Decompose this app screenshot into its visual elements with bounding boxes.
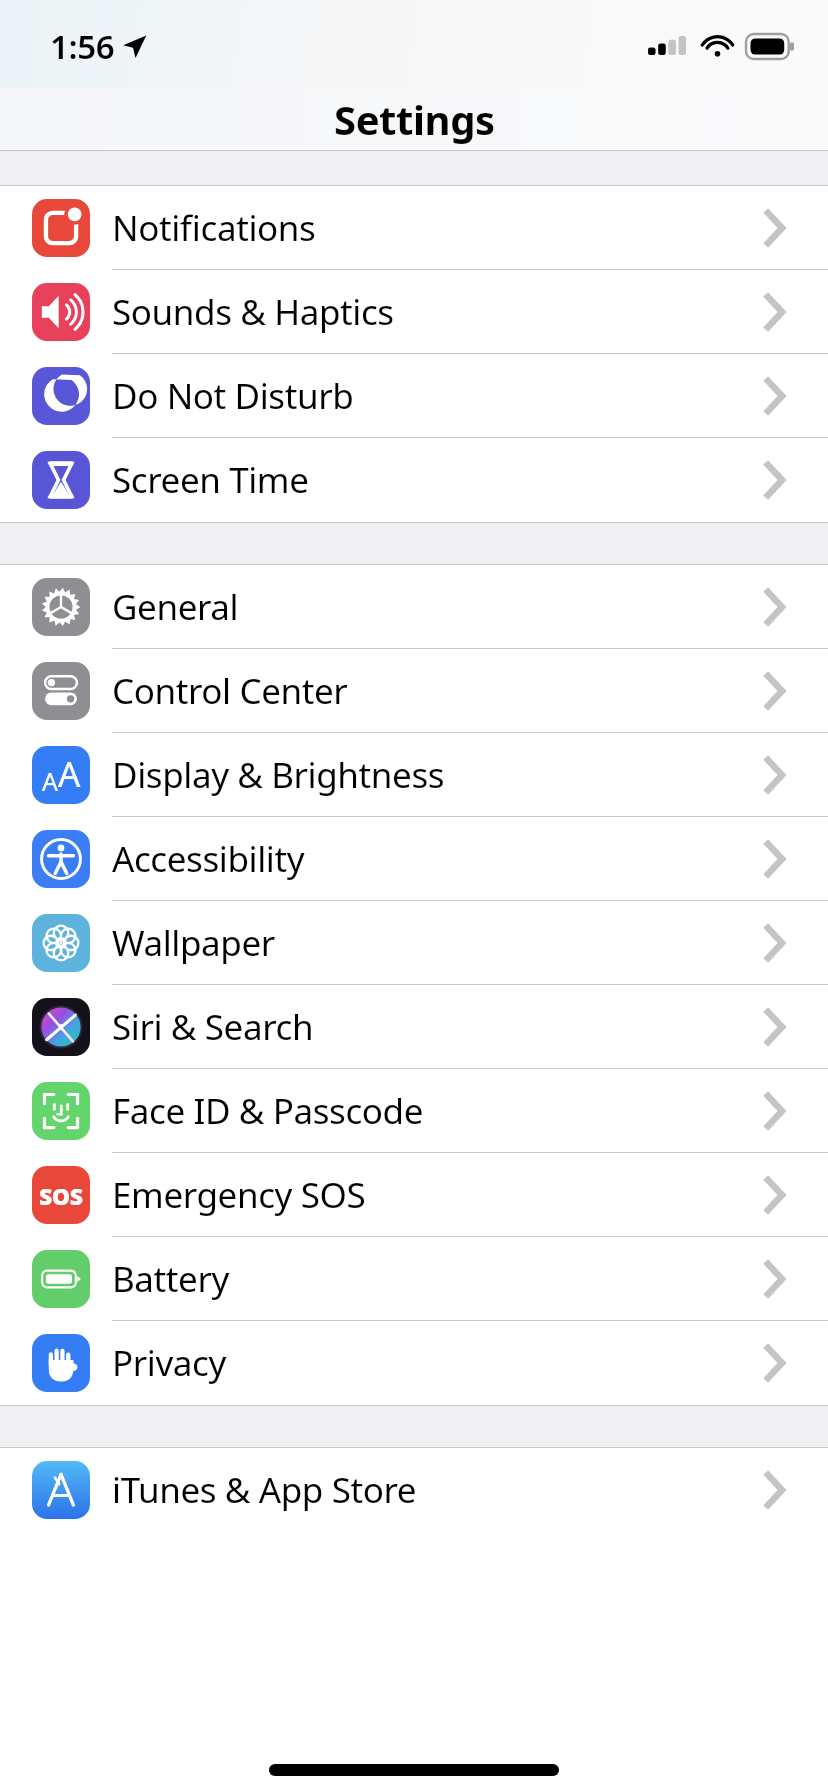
- button[interactable]: Display and Brightness: [0, 733, 828, 817]
- button[interactable]: Privacy: [0, 1321, 828, 1405]
- staticText: Accessibility: [112, 835, 305, 883]
- other: Notifications: [32, 199, 90, 257]
- button[interactable]: General: [0, 565, 828, 649]
- other: Siri and Search: [32, 998, 90, 1056]
- staticText: Control Center: [112, 667, 348, 715]
- other: Privacy: [32, 1334, 90, 1392]
- button[interactable]: Wallpaper: [0, 901, 828, 985]
- button[interactable]: iTunes and App Store: [0, 1448, 828, 1532]
- other: Wallpaper: [32, 914, 90, 972]
- button[interactable]: Screen Time: [0, 438, 828, 522]
- staticText: Display & Brightness: [112, 751, 445, 799]
- other: Accessibility: [32, 830, 90, 888]
- button[interactable]: Sounds and Haptics: [0, 270, 828, 354]
- staticText: Screen Time: [112, 456, 309, 504]
- staticText: Face ID & Passcode: [112, 1087, 424, 1135]
- staticText: SOS: [39, 1180, 83, 1211]
- button[interactable]: Siri and Search: [0, 985, 828, 1069]
- staticText: Privacy: [112, 1339, 226, 1387]
- button[interactable]: Notifications: [0, 186, 828, 270]
- other: Battery: [32, 1250, 90, 1308]
- other: Sounds and Haptics: [32, 283, 90, 341]
- staticText: 1:56: [50, 24, 115, 69]
- other: General: [32, 578, 90, 636]
- staticText: General: [112, 583, 239, 631]
- button[interactable]: Face ID and Passcode: [0, 1069, 828, 1153]
- staticText: A: [58, 750, 80, 798]
- other: Do Not Disturb: [32, 367, 90, 425]
- button[interactable]: Accessibility: [0, 817, 828, 901]
- staticText: Siri & Search: [112, 1003, 314, 1051]
- staticText: iTunes & App Store: [112, 1466, 417, 1514]
- staticText: Emergency SOS: [112, 1171, 366, 1219]
- button[interactable]: Control Center: [0, 649, 828, 733]
- staticText: Settings: [334, 92, 495, 146]
- button[interactable]: Battery: [0, 1237, 828, 1321]
- staticText: A: [42, 764, 58, 798]
- staticText: Battery: [112, 1255, 229, 1303]
- other: Control Center: [32, 662, 90, 720]
- other: Face ID and Passcode: [32, 1082, 90, 1140]
- staticText: Do Not Disturb: [112, 372, 354, 420]
- other: iTunes and App Store: [32, 1461, 90, 1519]
- staticText: Wallpaper: [112, 919, 275, 967]
- other: Display and Brightness: [32, 746, 90, 804]
- staticText: Notifications: [112, 204, 316, 252]
- button[interactable]: Do Not Disturb: [0, 354, 828, 438]
- other: Screen Time: [32, 451, 90, 509]
- other: Emergency SOS: [32, 1166, 90, 1224]
- staticText: Sounds & Haptics: [112, 288, 394, 336]
- button[interactable]: Emergency SOS: [0, 1153, 828, 1237]
